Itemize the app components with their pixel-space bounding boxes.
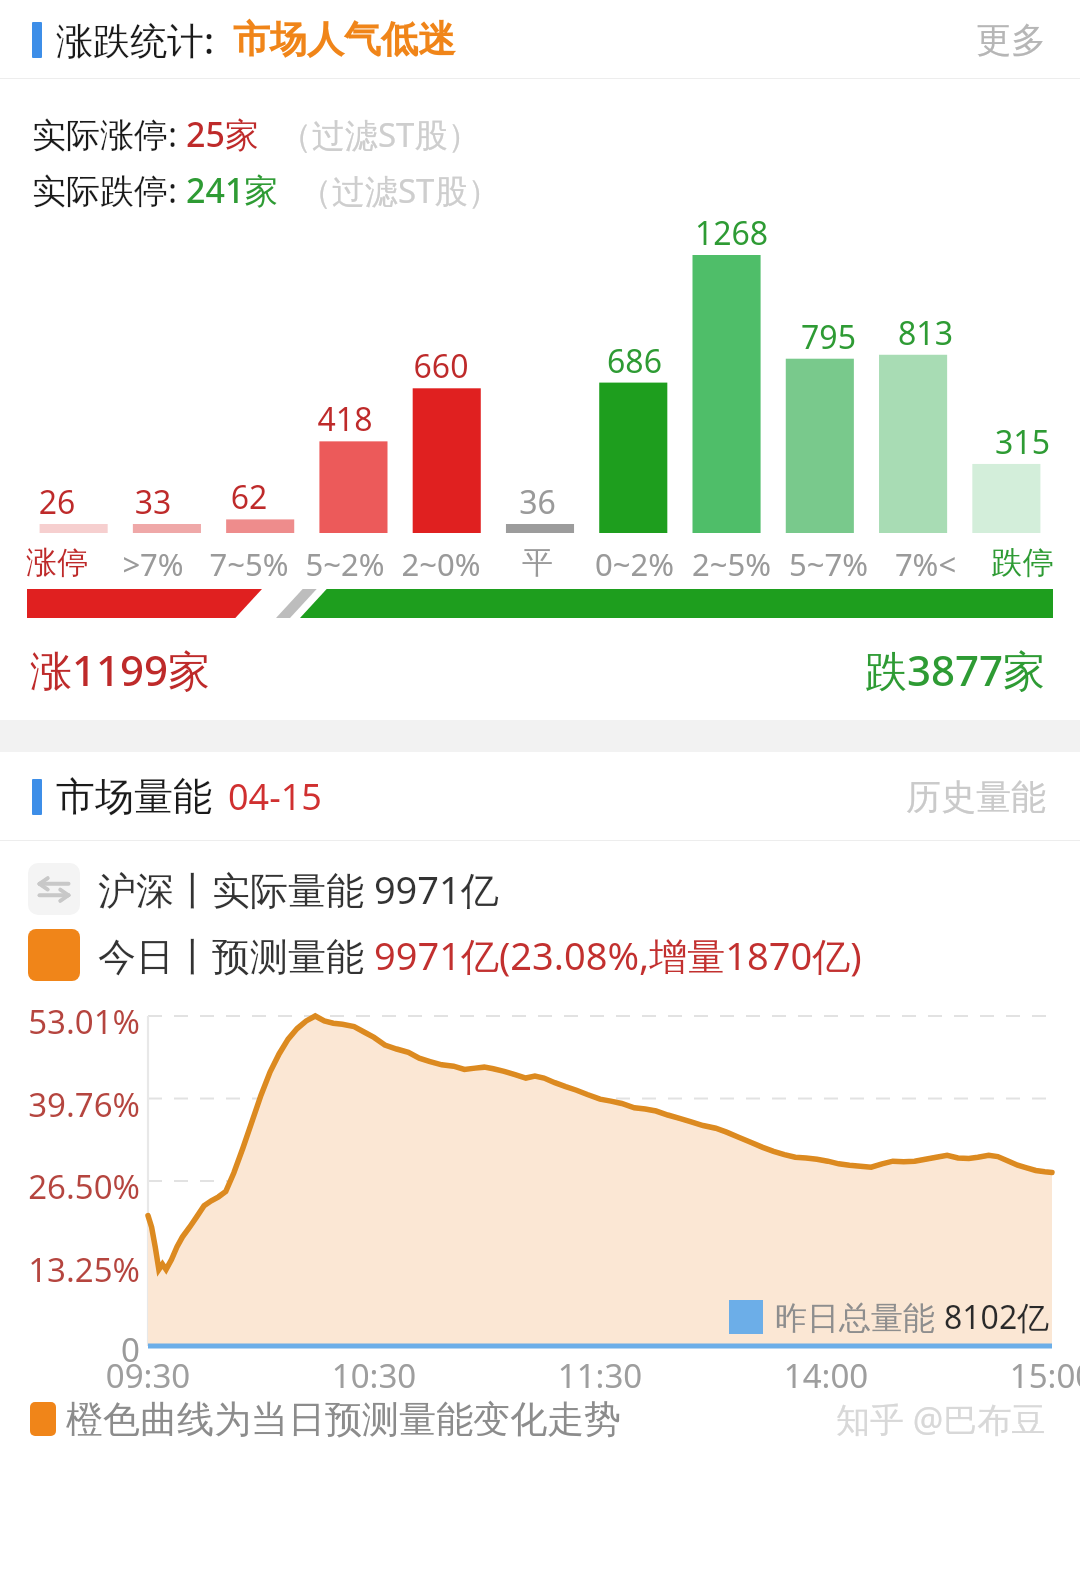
staticText: 686 — [586, 339, 683, 383]
staticText: 14:00 — [746, 1353, 906, 1398]
staticText: 涨1199家 — [30, 641, 211, 698]
staticText: 涨跌统计: — [56, 14, 215, 65]
staticText: 418 — [297, 397, 393, 441]
staticText: 1268 — [683, 211, 780, 255]
staticText: 5~2% — [297, 543, 393, 585]
button[interactable]: 市场量能 — [0, 752, 1080, 840]
staticText: 36 — [489, 480, 586, 524]
staticText: （过滤ST股） — [279, 112, 481, 157]
staticText: 2~5% — [683, 543, 780, 585]
staticText: 市场人气低迷 — [233, 16, 455, 63]
staticText: 5~7% — [780, 543, 877, 585]
other: 切换市场 — [28, 863, 80, 915]
staticText: 更多 — [976, 18, 1046, 62]
staticText: 39.76% — [0, 1082, 140, 1127]
staticText: 实际涨停: — [32, 111, 178, 157]
staticText: >7% — [105, 543, 201, 585]
staticText: 0 — [0, 1327, 140, 1372]
staticText: 62 — [201, 475, 297, 519]
button[interactable]: 历史量能 — [906, 775, 1046, 819]
staticText: （过滤ST股） — [299, 168, 501, 213]
button[interactable]: 更多 — [976, 18, 1046, 62]
staticText: 04-15 — [228, 772, 322, 821]
staticText: 9971亿(23.08%,增量1870亿) — [374, 929, 862, 981]
staticText: 知乎 @巴布豆 — [836, 1396, 1046, 1442]
staticText: 橙色曲线为当日预测量能变化走势 — [66, 1396, 621, 1443]
staticText: 历史量能 — [906, 775, 1046, 819]
staticText: 市场量能 — [56, 772, 212, 821]
button[interactable]: 涨跌统计: — [0, 0, 1080, 78]
staticText: 沪深丨实际量能 9971亿 — [98, 863, 499, 915]
staticText: 今日丨预测量能 — [98, 929, 374, 981]
staticText: 315 — [974, 420, 1071, 464]
staticText: 7%< — [877, 543, 974, 585]
staticText: 8102亿 — [944, 1295, 1050, 1339]
staticText: 25家 — [186, 111, 259, 157]
staticText: 15:00 — [972, 1353, 1080, 1398]
button[interactable] — [0, 585, 1080, 621]
staticText: 10:30 — [294, 1353, 454, 1398]
staticText: 跌停 — [974, 543, 1071, 582]
staticText: 660 — [393, 344, 489, 388]
staticText: 09:30 — [68, 1353, 228, 1398]
staticText: 平 — [489, 543, 586, 582]
staticText: 11:30 — [520, 1353, 680, 1398]
staticText: 跌3877家 — [865, 641, 1046, 698]
staticText: 实际跌停: — [32, 167, 178, 213]
staticText: 53.01% — [0, 999, 140, 1044]
staticText: 26 — [9, 480, 105, 524]
staticText: 昨日总量能 — [775, 1295, 944, 1339]
staticText: 795 — [780, 315, 877, 359]
staticText: 241家 — [186, 167, 279, 213]
staticText: 0~2% — [586, 543, 683, 585]
button[interactable]: 切换市场 — [28, 863, 499, 915]
button[interactable]: 26 — [0, 213, 1080, 585]
staticText: 13.25% — [0, 1247, 140, 1292]
staticText: 7~5% — [201, 543, 297, 585]
staticText: 涨停 — [9, 543, 105, 582]
staticText: 813 — [877, 311, 974, 355]
staticText: 26.50% — [0, 1164, 140, 1209]
button[interactable]: 今日丨预测量能 — [28, 929, 862, 981]
staticText: 2~0% — [393, 543, 489, 585]
button[interactable]: 53.01% — [0, 981, 1080, 1381]
staticText: 33 — [105, 480, 201, 524]
